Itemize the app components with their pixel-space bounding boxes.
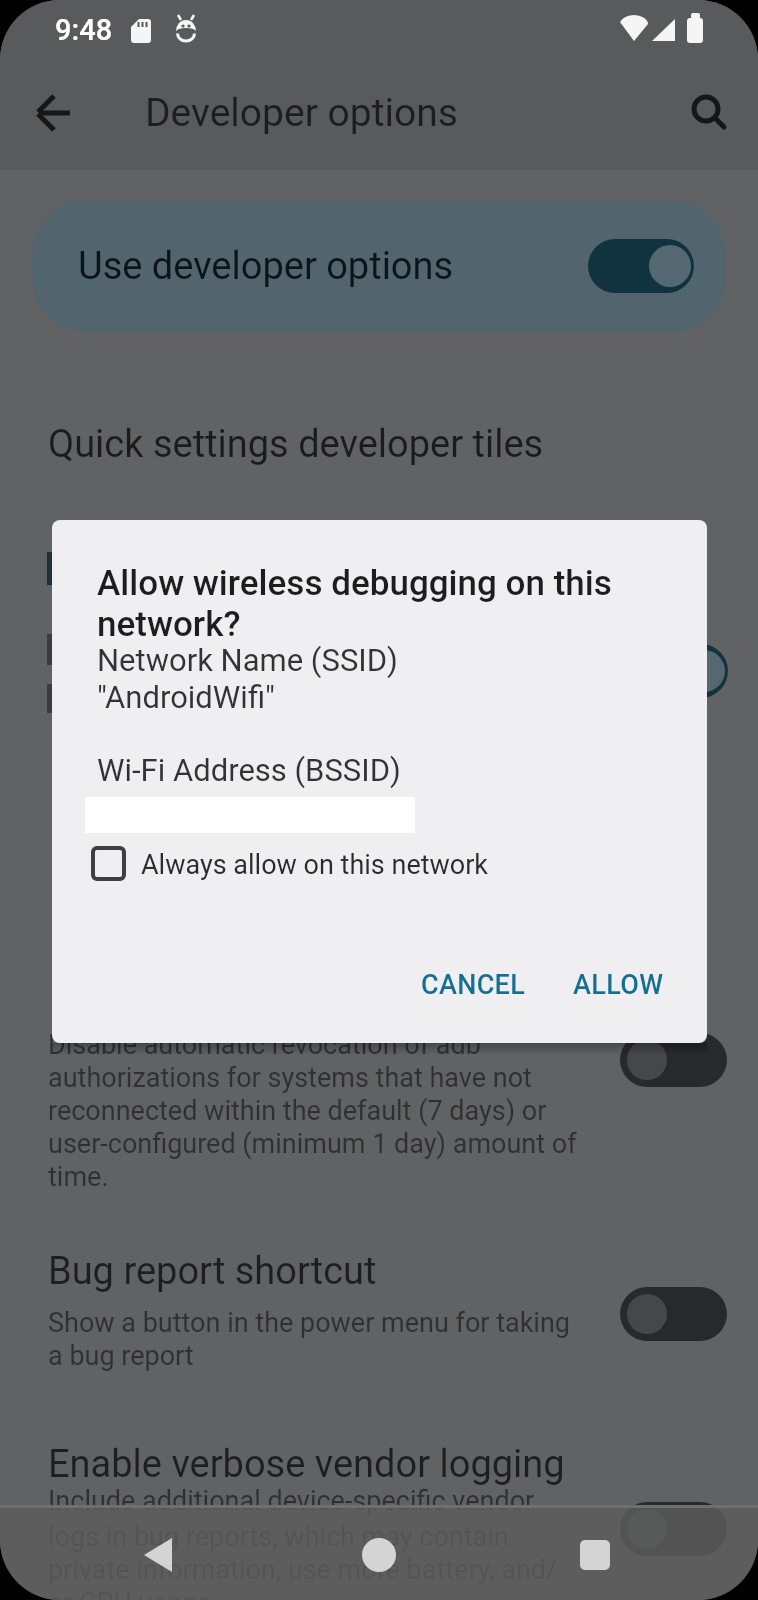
button[interactable] (120, 1525, 184, 1589)
staticText: private information, use more battery, a… (48, 1554, 558, 1586)
button[interactable] (677, 78, 741, 142)
staticText: Developer options (145, 90, 458, 136)
staticText: logs in bug reports, which may contain (48, 1521, 509, 1553)
staticText: Use developer options (78, 244, 454, 289)
button[interactable] (563, 1525, 627, 1589)
staticText: user-configured (minimum 1 day) amount o… (48, 1128, 577, 1160)
button[interactable] (622, 644, 728, 698)
button[interactable] (32, 200, 726, 332)
button[interactable]: CANCEL (413, 955, 533, 1015)
staticText: 9:48 (55, 13, 113, 47)
staticText: reconnected within the default (7 days) … (48, 1095, 547, 1127)
staticText: Wi-Fi Address (BSSID) (97, 752, 401, 788)
button[interactable] (620, 1287, 727, 1341)
staticText: Show a button in the power menu for taki… (48, 1307, 570, 1339)
button[interactable] (85, 840, 385, 884)
staticText: or CPU usage. (48, 1587, 219, 1600)
staticText: time. (48, 1161, 109, 1193)
button[interactable] (20, 78, 90, 148)
staticText: authorizations for systems that have not (48, 1062, 532, 1094)
staticText: Allow wireless debugging on this network… (97, 563, 612, 645)
button[interactable] (620, 1502, 727, 1556)
staticText: Enable verbose vendor logging (48, 1442, 565, 1487)
staticText: ALLOW (573, 969, 664, 1001)
staticText: "AndroidWifi" (97, 679, 275, 715)
staticText: Include additional device-specific vendo… (48, 1485, 535, 1517)
staticText: Network Name (SSID) (97, 642, 398, 678)
button[interactable]: ALLOW (562, 955, 674, 1015)
button[interactable] (347, 1525, 411, 1589)
button[interactable] (620, 1033, 727, 1087)
button[interactable] (588, 239, 694, 293)
staticText: CANCEL (421, 969, 526, 1001)
staticText: a bug report (48, 1340, 194, 1372)
staticText: Quick settings developer tiles (48, 422, 544, 467)
staticText: Bug report shortcut (48, 1249, 377, 1294)
staticText: Always allow on this network (141, 849, 489, 881)
staticText: Disable automatic revocation of adb (48, 1029, 481, 1061)
